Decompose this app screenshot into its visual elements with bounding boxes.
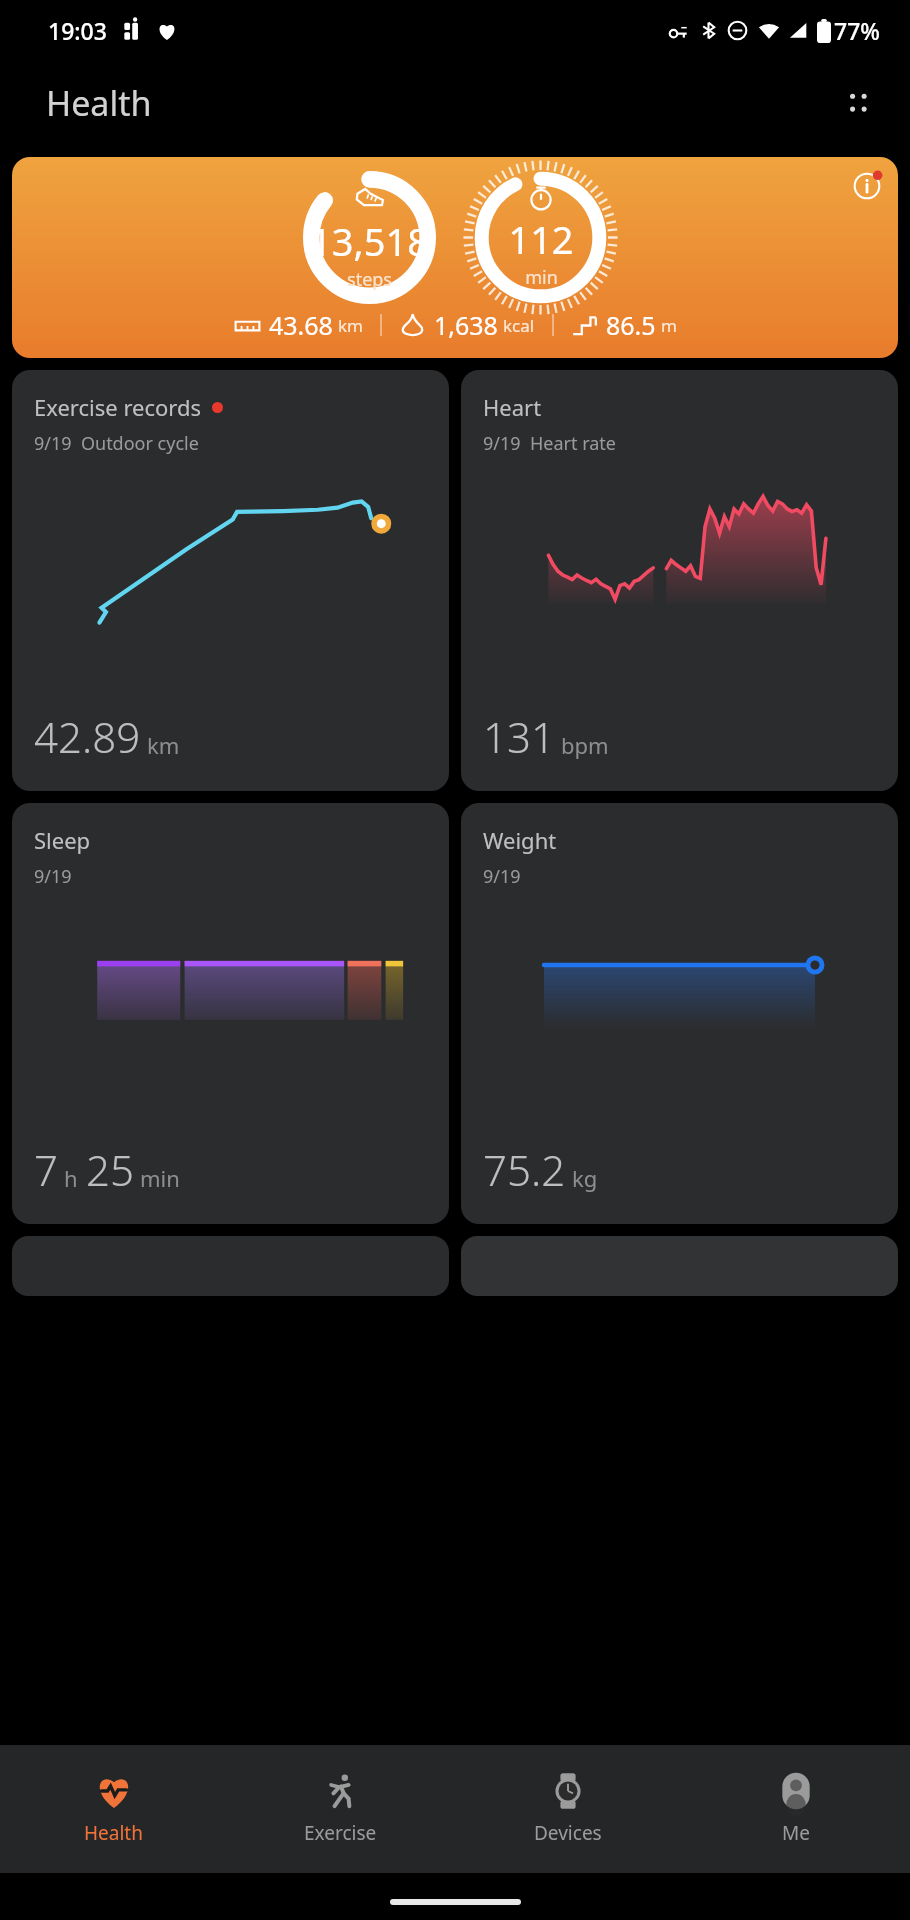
staticText: 13,518 — [310, 215, 429, 267]
button[interactable]: Health — [0, 1745, 227, 1873]
staticText: 43.68 — [269, 308, 333, 342]
button[interactable]: Exercise — [227, 1745, 454, 1873]
staticText: Health — [46, 80, 152, 126]
staticText: Sleep — [34, 825, 91, 855]
staticText: 9/19 Heart rate — [483, 431, 616, 456]
button[interactable]: Information — [847, 166, 887, 206]
button[interactable]: Devices — [454, 1745, 682, 1873]
button[interactable] — [461, 1236, 898, 1296]
staticText: Me — [782, 1820, 810, 1846]
staticText: km — [147, 730, 180, 760]
staticText: Health — [84, 1820, 143, 1846]
staticText: bpm — [561, 730, 609, 760]
button[interactable] — [12, 1236, 449, 1296]
staticText: 9/19 — [483, 864, 521, 889]
staticText: 42.89 — [34, 708, 141, 765]
button[interactable]: Exercise records — [12, 370, 449, 791]
staticText: 1,638 — [434, 308, 498, 342]
staticText: 25 — [86, 1141, 134, 1198]
staticText: 19:03 — [48, 15, 107, 46]
button[interactable]: Information — [12, 157, 898, 358]
staticText: kcal — [503, 314, 535, 337]
staticText: Exercise — [304, 1820, 377, 1846]
button[interactable]: Weight — [461, 803, 898, 1224]
button[interactable]: Me — [682, 1745, 910, 1873]
staticText: 77% — [834, 15, 880, 46]
button[interactable]: Sleep — [12, 803, 449, 1224]
staticText: Devices — [534, 1820, 602, 1846]
staticText: min — [525, 265, 558, 290]
staticText: 9/19 — [34, 864, 72, 889]
staticText: h — [64, 1163, 78, 1193]
staticText: 9/19 Outdoor cycle — [34, 431, 199, 456]
staticText: steps — [347, 267, 392, 292]
button[interactable]: More options — [830, 75, 886, 131]
staticText: km — [338, 314, 363, 337]
staticText: 131 — [483, 708, 555, 765]
staticText: 75.2 — [483, 1141, 566, 1198]
staticText: Weight — [483, 825, 557, 855]
staticText: kg — [572, 1163, 598, 1193]
button[interactable]: Heart — [461, 370, 898, 791]
staticText: min — [140, 1163, 180, 1193]
staticText: Heart — [483, 392, 542, 422]
staticText: 112 — [508, 213, 574, 265]
staticText: m — [661, 314, 677, 337]
staticText: 86.5 — [606, 308, 656, 342]
staticText: Exercise records — [34, 392, 202, 422]
staticText: 7 — [34, 1141, 58, 1198]
